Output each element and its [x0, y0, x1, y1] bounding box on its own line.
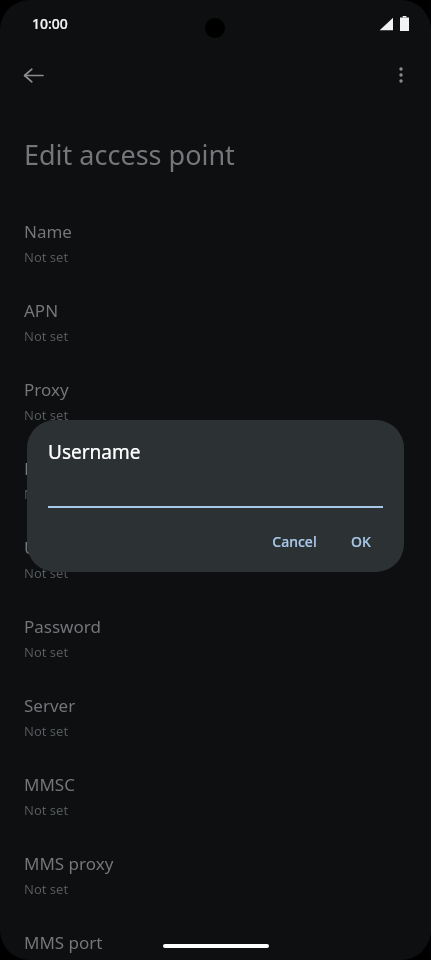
staticText: Cancel	[272, 532, 317, 551]
staticText: Password	[24, 615, 101, 638]
button[interactable]: Server	[0, 694, 431, 773]
staticText: Port	[24, 457, 58, 480]
staticText: Not set	[24, 722, 69, 740]
staticText: MMS proxy	[24, 852, 114, 875]
staticText: Not set	[24, 643, 69, 661]
staticText: Username	[24, 536, 107, 559]
button[interactable]: Proxy	[0, 378, 431, 457]
button[interactable]: MMSC	[0, 773, 431, 852]
staticText: 10:00	[32, 14, 68, 33]
staticText: Not set	[24, 485, 69, 503]
button[interactable]: MMS port	[0, 931, 431, 960]
button[interactable]: MMS proxy	[0, 852, 431, 931]
button[interactable]: Port	[0, 457, 431, 536]
staticText: OK	[351, 532, 371, 551]
staticText: MMSC	[24, 773, 75, 796]
button[interactable]: Password	[0, 615, 431, 694]
staticText: Name	[24, 220, 72, 243]
staticText: Username	[48, 439, 141, 465]
staticText: Not set	[24, 406, 69, 424]
button[interactable]: Cancel	[260, 525, 329, 558]
staticText: MMS port	[24, 931, 103, 954]
button[interactable]: APN	[0, 299, 431, 378]
button[interactable]: More options	[379, 53, 423, 97]
staticText: Not set	[24, 880, 69, 898]
staticText: Proxy	[24, 378, 69, 401]
button[interactable]: Username	[0, 536, 431, 615]
staticText: Not set	[24, 564, 69, 582]
staticText: Server	[24, 694, 76, 717]
button[interactable]: Name	[0, 220, 431, 299]
staticText: Edit access point	[24, 136, 235, 173]
button[interactable]: Back	[10, 52, 56, 98]
staticText: Not set	[24, 801, 69, 819]
button[interactable]: OK	[339, 525, 383, 558]
staticText: Not set	[24, 248, 69, 266]
staticText: APN	[24, 299, 59, 322]
staticText: Not set	[24, 327, 69, 345]
